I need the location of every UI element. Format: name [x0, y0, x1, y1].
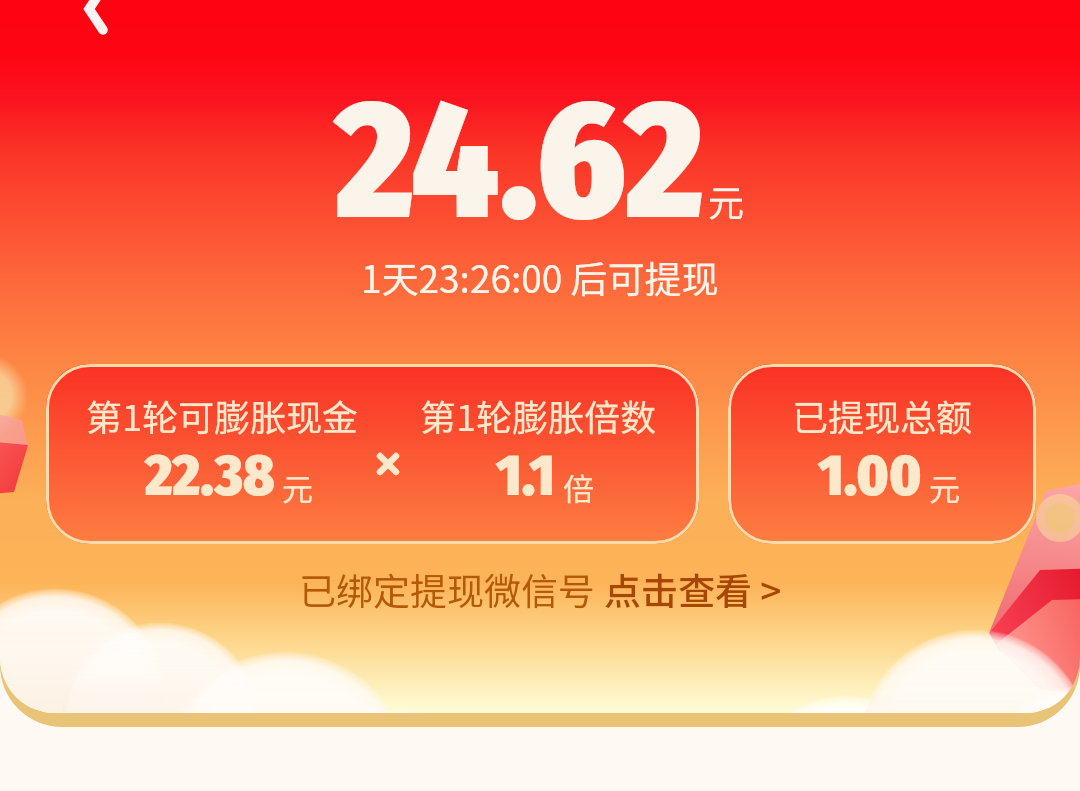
staticText: 1.00 — [818, 441, 922, 511]
button[interactable] — [380, 456, 396, 472]
staticText: 已提现总额 — [792, 389, 973, 441]
staticText: 22.38 — [145, 441, 275, 511]
staticText: 点击查看 > — [604, 562, 782, 616]
staticText: 第1轮可膨胀现金 — [86, 389, 358, 441]
staticText: 倍 — [563, 465, 594, 510]
button[interactable]: 第1轮可膨胀现金 — [46, 364, 699, 544]
button[interactable]: 已绑定提现微信号 — [299, 562, 782, 616]
staticText: 1.1 — [496, 441, 556, 511]
button[interactable]: Back — [60, 0, 132, 45]
staticText: 元 — [929, 465, 960, 510]
staticText: 元 — [708, 174, 745, 226]
staticText: 已绑定提现微信号 — [299, 562, 604, 616]
button[interactable]: 已提现总额 — [728, 364, 1036, 544]
staticText: 元 — [282, 465, 313, 510]
staticText: 1天23:26:00 后可提现 — [361, 250, 719, 304]
staticText: 第1轮膨胀倍数 — [420, 389, 656, 441]
staticText: 24.62 — [335, 62, 704, 261]
